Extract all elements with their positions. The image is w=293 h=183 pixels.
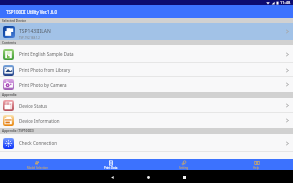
staticText: Device Status xyxy=(19,103,48,109)
staticText: Appendix (TSP100III) xyxy=(2,129,34,133)
button[interactable]: Device Status xyxy=(0,98,293,113)
button[interactable]: Model Selection xyxy=(0,159,74,170)
staticText: Print English Sample Data xyxy=(19,51,74,57)
staticText: Help xyxy=(253,166,260,170)
staticText: Setting xyxy=(179,166,189,170)
staticText: Print Photo by Camera xyxy=(19,82,67,88)
button[interactable]: Help xyxy=(220,159,293,170)
staticText: 11:48 xyxy=(280,0,291,5)
button[interactable]: Recents xyxy=(179,172,189,182)
button[interactable]: Print Data xyxy=(74,159,147,170)
staticText: TSP100III Utility Ver.1.6.0 xyxy=(6,9,58,15)
staticText: TSP-192.168.1.2 xyxy=(19,36,40,40)
staticText: TSP143IIILAN xyxy=(19,28,51,35)
staticText: Contents xyxy=(2,41,17,45)
button[interactable]: Home xyxy=(143,172,153,182)
button[interactable]: TSP143IIILAN xyxy=(0,23,293,40)
button[interactable]: Check Connection xyxy=(0,134,293,152)
button[interactable]: Print Photo from Library xyxy=(0,63,293,77)
staticText: Appendix xyxy=(2,93,17,97)
staticText: Selected Device xyxy=(2,19,27,23)
button[interactable]: Setting xyxy=(147,159,220,170)
button[interactable]: Device Information xyxy=(0,113,293,128)
button[interactable]: Print English Sample Data xyxy=(0,45,293,63)
staticText: Check Connection xyxy=(19,140,58,146)
button[interactable]: Back xyxy=(107,172,117,182)
staticText: Print Photo from Library xyxy=(19,67,71,73)
staticText: Model Selection xyxy=(27,166,48,170)
staticText: Print Data xyxy=(104,166,118,170)
button[interactable]: Print Photo by Camera xyxy=(0,77,293,92)
staticText: Device Information xyxy=(19,118,60,124)
